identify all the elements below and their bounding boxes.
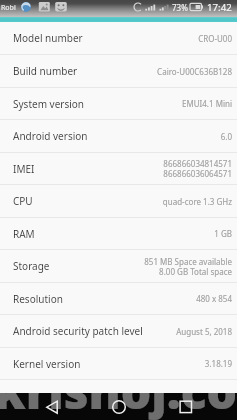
staticText: Robi <box>1 3 16 13</box>
button[interactable]: Kernel version <box>0 348 237 380</box>
staticText: EMUI4.1 Mini <box>182 98 232 109</box>
staticText: August 5, 2018 <box>176 326 232 337</box>
staticText: Android version <box>13 129 88 143</box>
staticText: 17:42 <box>207 1 232 14</box>
button[interactable]: IMEI <box>0 153 237 185</box>
staticText: krishoj.co <box>0 393 237 420</box>
button[interactable]: Back <box>30 393 75 420</box>
button[interactable]: Home <box>96 393 141 420</box>
staticText: CRO-U00 <box>198 33 232 44</box>
staticText: 480 x 854 <box>196 293 232 304</box>
staticText: CPU <box>13 194 33 208</box>
staticText: Cairo-U00C636B128 <box>157 66 232 77</box>
staticText: 3.18.19 <box>204 358 232 369</box>
staticText: 851 MB Space available 8.00 GB Total spa… <box>144 256 232 277</box>
staticText: System version <box>13 97 85 111</box>
button[interactable]: Recents <box>163 393 208 420</box>
staticText: RAM <box>13 227 35 241</box>
button[interactable]: Resolution <box>0 283 237 315</box>
staticText: Android security patch level <box>13 324 143 338</box>
staticText: Model number <box>13 31 83 45</box>
button[interactable]: System version <box>0 88 237 120</box>
button[interactable]: Storage <box>0 250 237 283</box>
staticText: 1 GB <box>214 228 232 239</box>
staticText: Build number <box>13 64 78 78</box>
staticText: quad-core 1.3 GHz <box>162 196 232 207</box>
button[interactable]: RAM <box>0 218 237 250</box>
staticText: Kernel version <box>13 357 81 371</box>
staticText: 866866034814571 866866036064571 <box>163 158 232 179</box>
button[interactable]: Android version <box>0 120 237 153</box>
staticText: Resolution <box>13 292 63 306</box>
staticText: IMEI <box>13 162 35 176</box>
staticText: 6.0 <box>220 131 232 142</box>
button[interactable]: Model number <box>0 22 237 55</box>
button[interactable]: CPU <box>0 185 237 218</box>
button[interactable]: Android security patch level <box>0 315 237 348</box>
staticText: Storage <box>13 259 50 273</box>
staticText: 73% <box>172 2 188 13</box>
button[interactable]: Build number <box>0 55 237 88</box>
